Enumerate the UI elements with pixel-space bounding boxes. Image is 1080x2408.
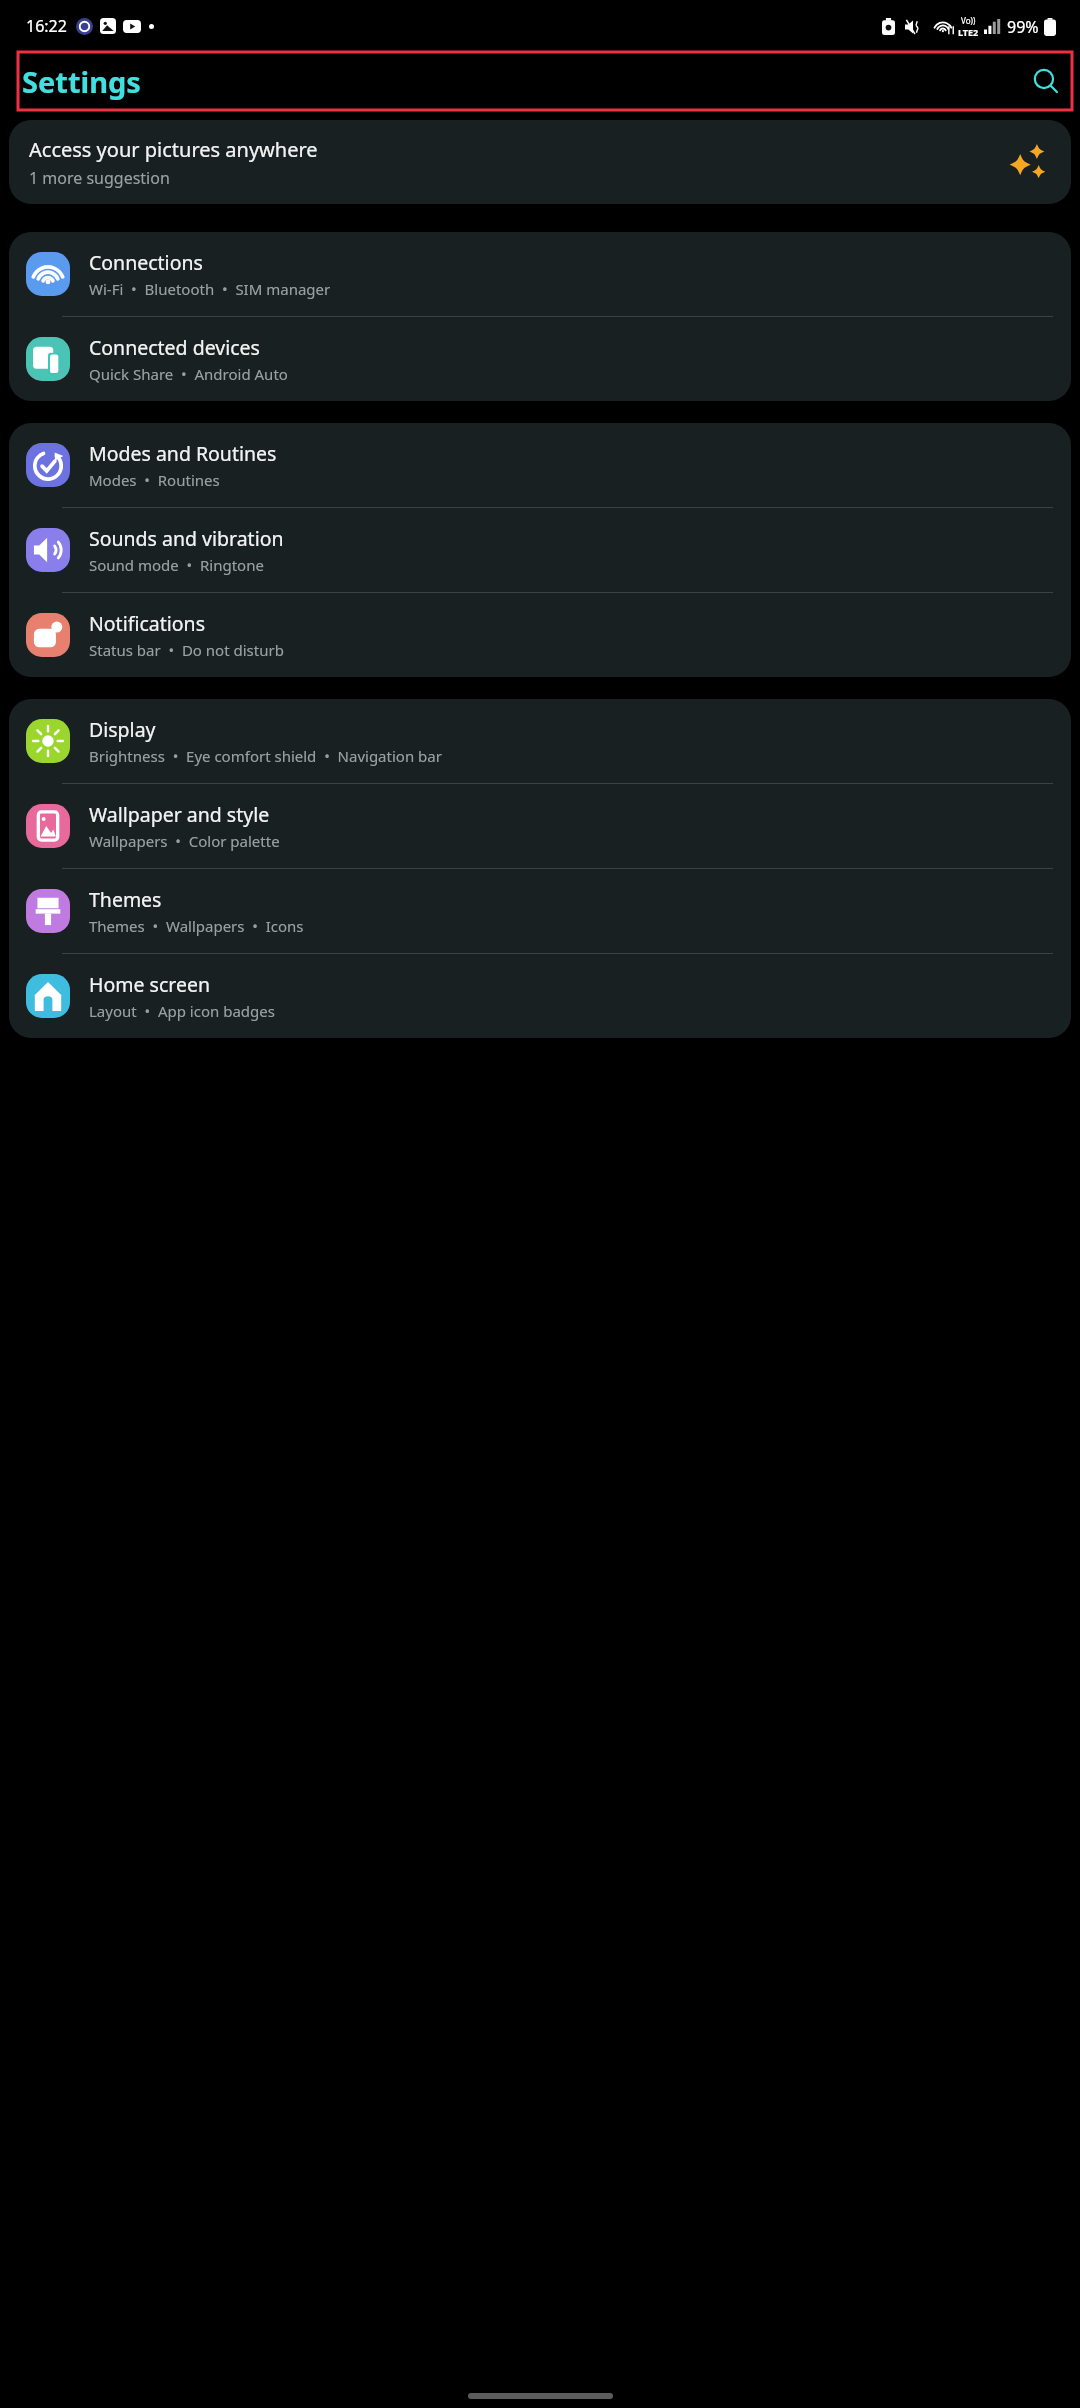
staticText: Connected devices bbox=[89, 334, 260, 361]
staticText: Wallpaper and style bbox=[89, 801, 270, 828]
staticText: Modes • Routines bbox=[89, 470, 220, 490]
staticText: Access your pictures anywhere bbox=[29, 136, 318, 163]
staticText: Sounds and vibration bbox=[89, 525, 284, 552]
button[interactable]: Connections bbox=[9, 232, 1071, 316]
button[interactable]: Modes and Routines bbox=[9, 423, 1071, 507]
staticText: Sound mode • Ringtone bbox=[89, 555, 264, 575]
button[interactable]: Access your pictures anywhere bbox=[9, 120, 1071, 204]
staticText: Home screen bbox=[89, 971, 210, 998]
staticText: Wi-Fi • Bluetooth • SIM manager bbox=[89, 279, 331, 299]
button[interactable]: Display bbox=[9, 699, 1071, 783]
staticText: Quick Share • Android Auto bbox=[89, 364, 288, 384]
button[interactable]: Search bbox=[1024, 59, 1068, 103]
staticText: 99% bbox=[1007, 16, 1039, 38]
staticText: Display bbox=[89, 716, 156, 743]
button[interactable]: Themes bbox=[9, 869, 1071, 953]
button[interactable]: Wallpaper and style bbox=[9, 784, 1071, 868]
staticText: Status bar • Do not disturb bbox=[89, 640, 284, 660]
staticText: Layout • App icon badges bbox=[89, 1001, 275, 1021]
button[interactable]: Home screen bbox=[9, 954, 1071, 1038]
staticText: Wallpapers • Color palette bbox=[89, 831, 280, 851]
staticText: Modes and Routines bbox=[89, 440, 277, 467]
staticText: Vo)) bbox=[961, 15, 976, 26]
staticText: LTE2 bbox=[958, 26, 979, 38]
staticText: Notifications bbox=[89, 610, 205, 637]
staticText: Connections bbox=[89, 249, 203, 276]
button[interactable]: Connected devices bbox=[9, 317, 1071, 401]
staticText: Brightness • Eye comfort shield • Naviga… bbox=[89, 746, 442, 766]
button[interactable]: Sounds and vibration bbox=[9, 508, 1071, 592]
staticText: 16:22 bbox=[26, 15, 67, 37]
button[interactable]: Notifications bbox=[9, 593, 1071, 677]
staticText: 1 more suggestion bbox=[29, 167, 170, 189]
staticText: Themes • Wallpapers • Icons bbox=[89, 916, 304, 936]
staticText: Themes bbox=[89, 886, 162, 913]
staticText: Settings bbox=[22, 62, 141, 101]
